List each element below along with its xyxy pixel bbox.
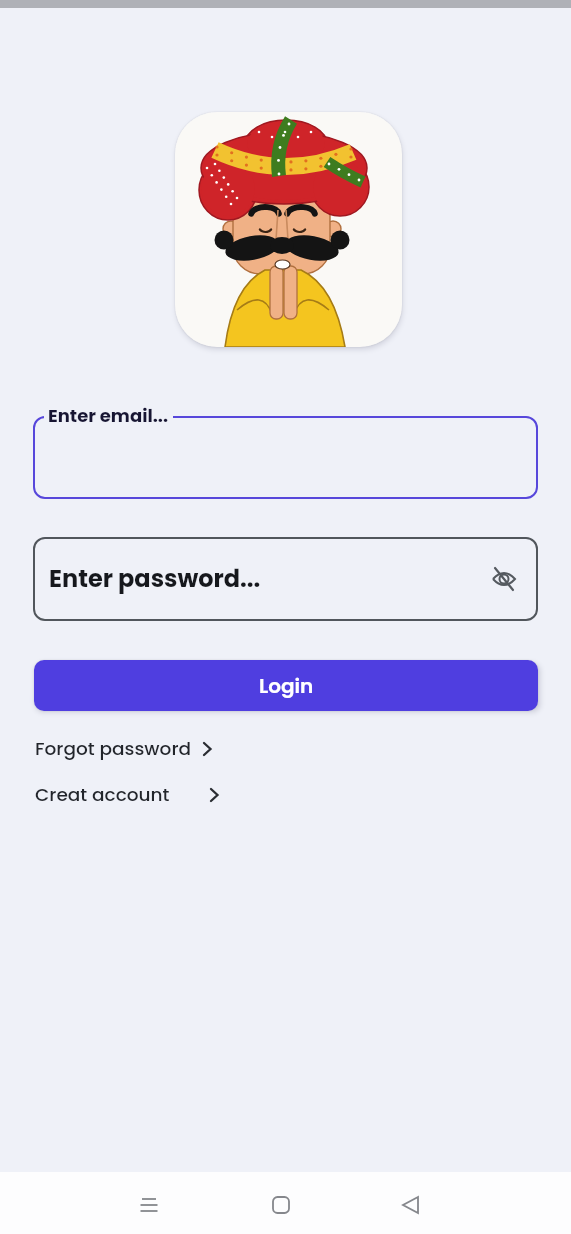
button[interactable]: Forgot password — [35, 736, 215, 762]
button[interactable]: Enter email... — [48, 403, 169, 428]
staticText: Forgot password — [35, 736, 192, 762]
staticText: Enter password... — [49, 562, 261, 596]
staticText: Login — [259, 672, 314, 700]
staticText: Creat account — [35, 782, 170, 808]
button[interactable]: Enter password... — [33, 537, 538, 621]
button[interactable]: Login — [34, 660, 538, 711]
button[interactable]: Creat account — [35, 782, 222, 808]
staticText: Enter email... — [48, 403, 169, 428]
button[interactable] — [33, 416, 538, 499]
